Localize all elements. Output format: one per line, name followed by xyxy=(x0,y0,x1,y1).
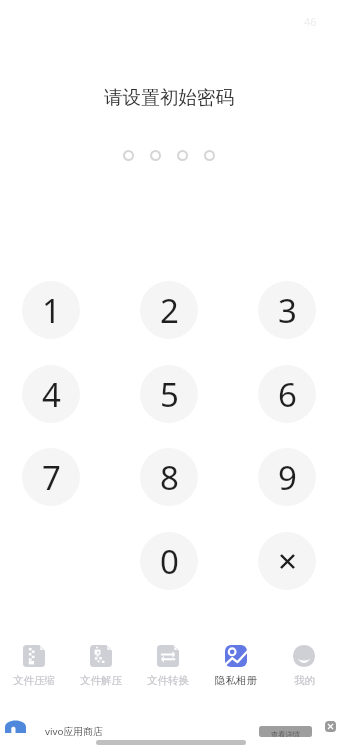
button[interactable]: Delete xyxy=(258,532,316,590)
button[interactable]: 文件转换 xyxy=(134,645,202,687)
staticText: 46 xyxy=(304,14,317,29)
button[interactable]: 文件解压 xyxy=(67,645,134,687)
staticText: 4 xyxy=(42,372,61,417)
button[interactable]: 7 xyxy=(22,448,80,506)
staticText: 我的 xyxy=(294,674,315,687)
staticText: 文件转换 xyxy=(147,674,189,687)
staticText: 6 xyxy=(278,372,297,417)
button[interactable]: 隐私相册 xyxy=(202,645,270,687)
button[interactable]: 5 xyxy=(140,365,198,423)
staticText: 文件压缩 xyxy=(13,674,55,687)
staticText: 7 xyxy=(42,455,61,500)
staticText: vivo应用商店 xyxy=(45,725,103,738)
button[interactable]: 6 xyxy=(258,365,316,423)
staticText: 文件解压 xyxy=(80,674,122,687)
staticText: 查看详情 xyxy=(271,730,300,737)
other: 文件解压 xyxy=(90,645,112,667)
button[interactable]: 3 xyxy=(258,281,316,339)
staticText: 隐私相册 xyxy=(215,674,257,687)
staticText: 5 xyxy=(160,372,179,417)
other: 文件压缩 xyxy=(23,645,45,667)
staticText: 9 xyxy=(278,455,297,500)
button[interactable]: 我的 xyxy=(270,645,338,687)
button[interactable]: 2 xyxy=(140,281,198,339)
button[interactable]: 1 xyxy=(22,281,80,339)
button[interactable]: 9 xyxy=(258,448,316,506)
button[interactable]: 4 xyxy=(22,365,80,423)
button[interactable]: 文件压缩 xyxy=(0,645,67,687)
staticText: 0 xyxy=(160,539,179,584)
staticText: 请设置初始密码 xyxy=(104,86,235,109)
other: 文件转换 xyxy=(157,645,179,667)
staticText: 3 xyxy=(278,288,297,333)
other: 隐私相册 xyxy=(225,645,247,667)
button[interactable]: 0 xyxy=(140,532,198,590)
staticText: 1 xyxy=(42,288,61,333)
other: 我的 xyxy=(293,645,315,667)
button[interactable]: 查看详情 xyxy=(259,726,312,737)
staticText: 8 xyxy=(160,455,179,500)
button[interactable]: 关闭 xyxy=(325,721,336,732)
staticText: 2 xyxy=(160,288,179,333)
button[interactable]: 8 xyxy=(140,448,198,506)
